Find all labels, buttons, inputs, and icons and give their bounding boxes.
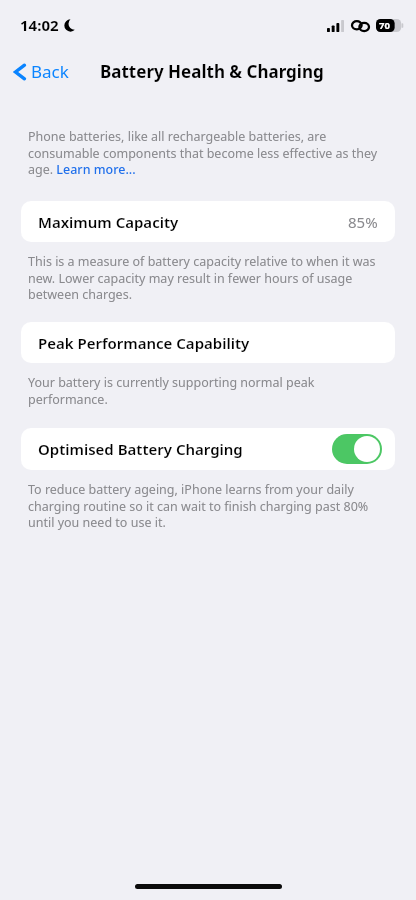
button[interactable]: Back xyxy=(10,57,72,86)
button[interactable]: Optimised Battery Charging toggle, on xyxy=(332,434,382,464)
staticText: To reduce battery ageing, iPhone learns … xyxy=(28,481,388,530)
button[interactable]: Maximum Capacity xyxy=(21,201,395,242)
staticText: Optimised Battery Charging xyxy=(38,439,243,459)
staticText: 85% xyxy=(348,212,378,232)
staticText: Phone batteries, like all rechargeable b… xyxy=(28,128,388,177)
button[interactable]: Peak Performance Capability xyxy=(21,322,395,363)
button[interactable]: Optimised Battery Charging xyxy=(21,428,395,470)
staticText: Battery Health & Charging xyxy=(100,60,324,83)
staticText: 14:02 xyxy=(20,15,59,35)
staticText: Peak Performance Capability xyxy=(38,333,250,353)
staticText: This is a measure of battery capacity re… xyxy=(28,253,388,302)
staticText: Your battery is currently supporting nor… xyxy=(28,374,388,407)
staticText: Maximum Capacity xyxy=(38,212,179,232)
staticText: Back xyxy=(31,60,69,83)
staticText: 70 xyxy=(379,19,390,32)
